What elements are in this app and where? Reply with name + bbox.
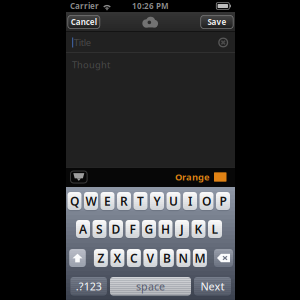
- button[interactable]: M: [193, 248, 207, 268]
- button[interactable]: O: [199, 191, 213, 211]
- button[interactable]: Sync: [142, 16, 158, 28]
- staticText: Save: [207, 17, 226, 27]
- staticText: H: [161, 221, 170, 237]
- button[interactable]: Next: [194, 276, 231, 296]
- button[interactable]: D: [109, 219, 123, 239]
- staticText: B: [163, 250, 171, 266]
- button[interactable]: L: [208, 219, 222, 239]
- staticText: Q: [70, 193, 79, 209]
- staticText: .?123: [76, 279, 102, 293]
- staticText: D: [111, 221, 120, 237]
- button[interactable]: E: [100, 191, 114, 211]
- staticText: Z: [97, 250, 104, 266]
- button[interactable]: W: [84, 191, 98, 211]
- button[interactable]: J: [175, 219, 189, 239]
- button[interactable]: V: [143, 248, 157, 268]
- staticText: Orange: [175, 171, 210, 183]
- staticText: S: [96, 221, 103, 237]
- staticText: F: [129, 221, 135, 237]
- button[interactable]: K: [191, 219, 205, 239]
- staticText: C: [130, 250, 138, 266]
- button[interactable]: Clear text: [218, 38, 228, 47]
- staticText: A: [79, 221, 87, 237]
- staticText: K: [194, 221, 202, 237]
- staticText: E: [104, 193, 111, 209]
- button[interactable]: Orange: [175, 171, 226, 183]
- staticText: L: [211, 221, 218, 237]
- button[interactable]: Hide keyboard: [69, 170, 88, 184]
- button[interactable]: P: [216, 191, 230, 211]
- button[interactable]: F: [125, 219, 139, 239]
- staticText: R: [120, 193, 128, 209]
- button[interactable]: A: [76, 219, 90, 239]
- staticText: Cancel: [71, 17, 97, 27]
- staticText: P: [219, 193, 226, 209]
- button[interactable]: N: [176, 248, 190, 268]
- staticText: X: [113, 250, 121, 266]
- button[interactable]: Save: [201, 15, 233, 28]
- button[interactable]: Y: [150, 191, 164, 211]
- staticText: G: [144, 221, 153, 237]
- button[interactable]: C: [127, 248, 141, 268]
- button[interactable]: R: [117, 191, 131, 211]
- staticText: I: [188, 193, 192, 209]
- staticText: N: [178, 250, 188, 266]
- staticText: T: [137, 193, 144, 209]
- button[interactable]: Delete: [214, 248, 233, 268]
- button[interactable]: T: [133, 191, 147, 211]
- staticText: Thought: [72, 58, 110, 71]
- button[interactable]: B: [160, 248, 174, 268]
- staticText: 10:26 PM: [132, 1, 169, 11]
- button[interactable]: U: [166, 191, 180, 211]
- button[interactable]: I: [183, 191, 197, 211]
- staticText: J: [180, 221, 184, 237]
- button[interactable]: .?123: [70, 276, 107, 296]
- staticText: Next: [200, 279, 224, 293]
- button[interactable]: space: [110, 276, 191, 296]
- staticText: Y: [153, 193, 160, 209]
- staticText: M: [194, 250, 205, 266]
- button[interactable]: G: [142, 219, 156, 239]
- staticText: U: [169, 193, 178, 209]
- button[interactable]: H: [158, 219, 172, 239]
- staticText: space: [136, 279, 165, 293]
- staticText: V: [146, 250, 154, 266]
- staticText: W: [85, 193, 96, 209]
- staticText: Carrier: [70, 1, 99, 11]
- button[interactable]: Shift: [69, 248, 86, 268]
- staticText: O: [202, 193, 211, 209]
- button[interactable]: Q: [67, 191, 81, 211]
- staticText: Title: [74, 36, 91, 49]
- button[interactable]: S: [92, 219, 106, 239]
- button[interactable]: Cancel: [68, 15, 100, 28]
- button[interactable]: Z: [94, 248, 108, 268]
- button[interactable]: X: [110, 248, 124, 268]
